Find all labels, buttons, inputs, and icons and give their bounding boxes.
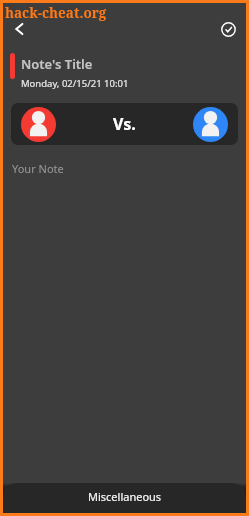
staticText: hack-cheat.org bbox=[5, 4, 107, 22]
button[interactable]: Player one bbox=[21, 107, 56, 142]
staticText: Your Note bbox=[12, 161, 64, 176]
button[interactable]: Back bbox=[7, 17, 31, 41]
button[interactable]: Player two bbox=[193, 107, 228, 142]
button[interactable]: Done bbox=[215, 16, 241, 42]
button[interactable]: Miscellaneous bbox=[3, 483, 246, 513]
staticText: Vs. bbox=[113, 113, 136, 135]
staticText: Monday, 02/15/21 10:01 bbox=[21, 77, 129, 90]
staticText: Miscellaneous bbox=[88, 489, 162, 504]
staticText: Note's Title bbox=[21, 55, 93, 73]
